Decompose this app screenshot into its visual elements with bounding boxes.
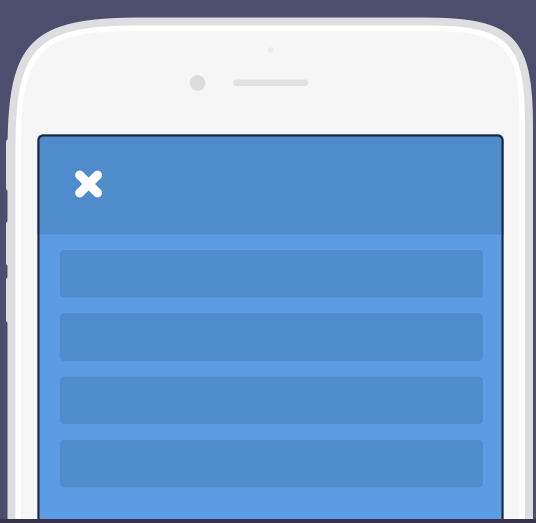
- button[interactable]: Close: [60, 155, 118, 213]
